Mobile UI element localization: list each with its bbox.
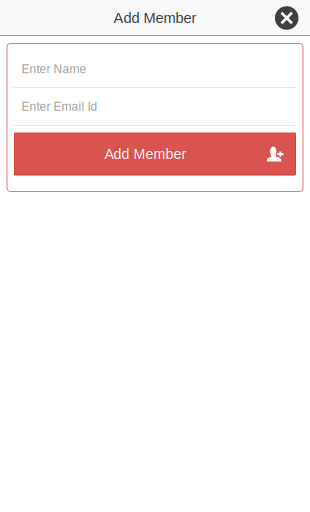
button[interactable]: Close (275, 6, 298, 30)
staticText: Add Member (104, 146, 186, 162)
staticText: Enter Email Id (21, 100, 97, 113)
button[interactable]: Add Member (14, 133, 295, 175)
staticText: Add Member (113, 10, 196, 26)
staticText: Enter Name (21, 62, 86, 76)
